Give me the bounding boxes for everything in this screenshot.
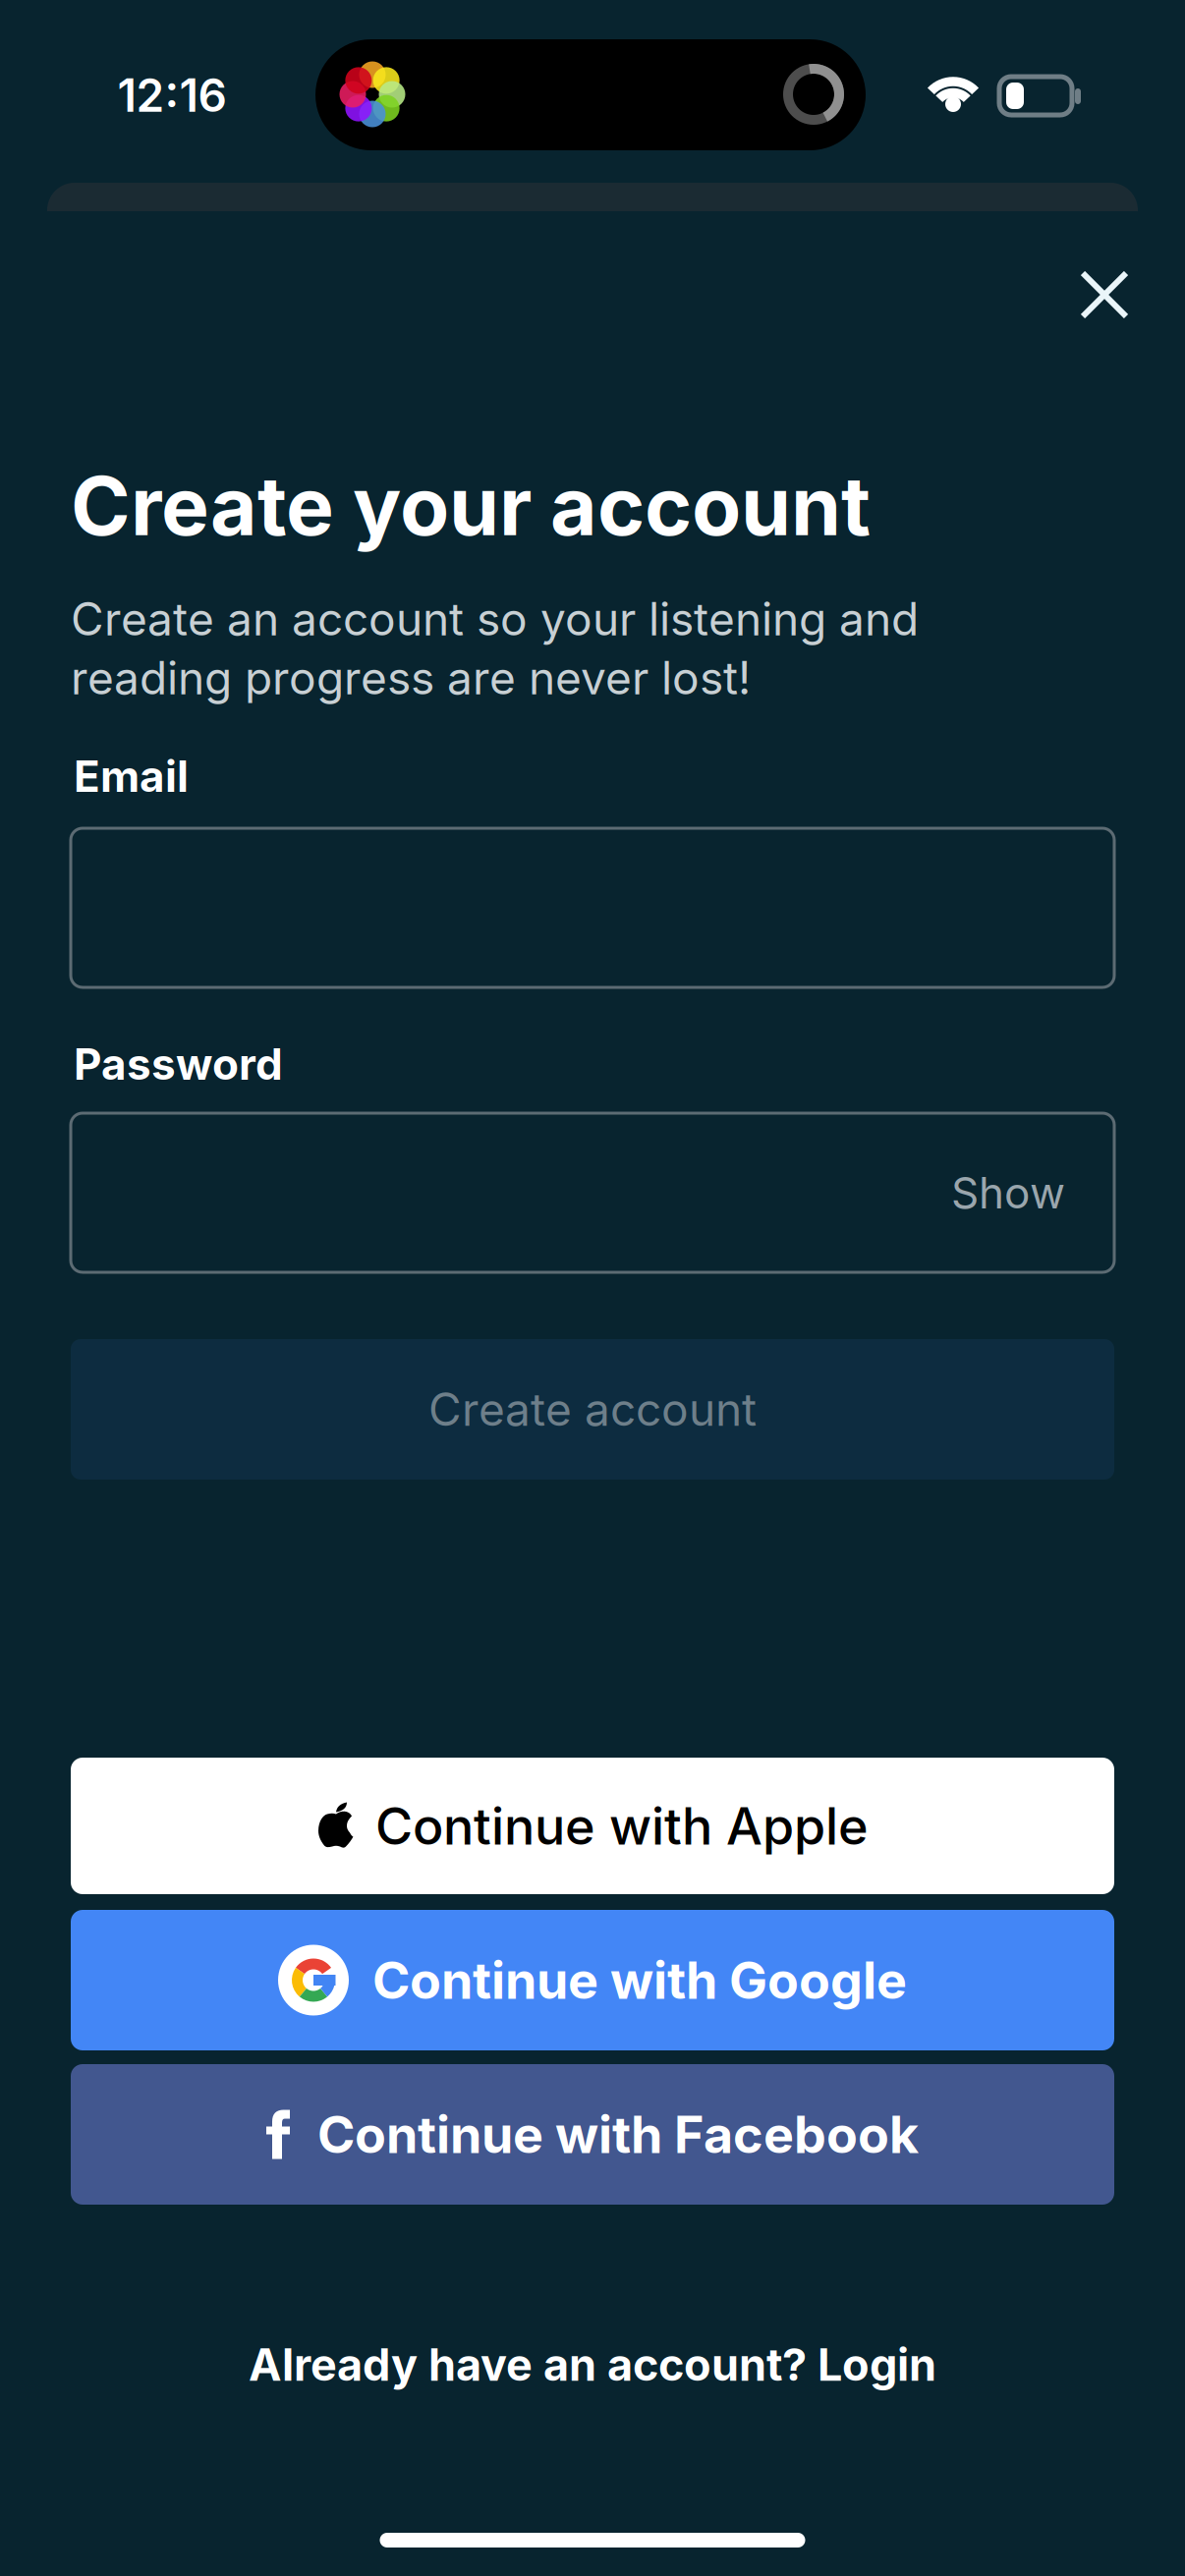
staticText: Create account bbox=[428, 1382, 757, 1437]
button[interactable]: Create account bbox=[71, 1339, 1114, 1480]
staticText: Password bbox=[74, 1038, 283, 1090]
button[interactable] bbox=[71, 828, 1114, 987]
staticText: reading progress are never lost! bbox=[71, 651, 751, 705]
button[interactable]: Continue with Apple bbox=[71, 1758, 1114, 1894]
staticText: Continue with Facebook bbox=[317, 2103, 919, 2165]
staticText: Already have an account? Login bbox=[249, 2338, 936, 2391]
button[interactable]: Show bbox=[869, 1113, 1065, 1272]
button[interactable] bbox=[71, 1113, 1114, 1272]
staticText: Continue with Apple bbox=[375, 1795, 869, 1857]
button[interactable]: Continue with Google bbox=[71, 1910, 1114, 2050]
staticText: Email bbox=[74, 750, 189, 802]
staticText: Show bbox=[951, 1167, 1065, 1219]
button[interactable] bbox=[1060, 251, 1149, 339]
staticText: 12:16 bbox=[117, 68, 226, 123]
staticText: Create your account bbox=[71, 457, 871, 555]
button[interactable]: Already have an account? Login bbox=[0, 2330, 1185, 2399]
staticText: Create an account so your listening and bbox=[71, 592, 919, 646]
staticText: Continue with Google bbox=[372, 1949, 907, 2011]
button[interactable]: Continue with Facebook bbox=[71, 2064, 1114, 2205]
